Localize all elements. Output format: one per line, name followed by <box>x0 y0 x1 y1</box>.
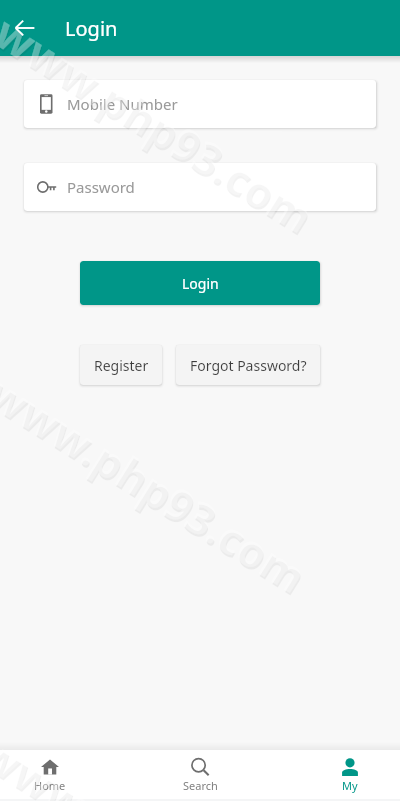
staticText: www.php93.com <box>0 725 311 801</box>
staticText: www.php93.com <box>0 722 311 801</box>
staticText: Mobile Number <box>67 94 178 114</box>
staticText: www.php93.com <box>0 362 318 606</box>
staticText: www.php93.com <box>0 365 318 609</box>
staticText: Password <box>67 177 135 197</box>
button[interactable]: Back <box>7 10 43 46</box>
button[interactable]: Mobile Number <box>24 80 376 128</box>
button[interactable]: Home <box>0 750 100 801</box>
button[interactable]: Password <box>24 163 376 211</box>
staticText: Login <box>182 274 219 293</box>
button[interactable]: My <box>300 750 400 801</box>
staticText: www.php93.com <box>0 2 325 246</box>
button[interactable]: Register <box>80 345 162 385</box>
staticText: Login <box>65 15 118 42</box>
staticText: Register <box>94 356 149 375</box>
staticText: www.php93.com <box>0 5 325 249</box>
staticText: Search <box>183 778 218 793</box>
staticText: Home <box>34 778 66 793</box>
button[interactable]: Search <box>150 750 250 801</box>
staticText: My <box>342 778 358 793</box>
button[interactable]: Forgot Password? <box>176 345 320 385</box>
button[interactable]: Login <box>80 261 320 305</box>
staticText: Forgot Password? <box>190 356 307 375</box>
